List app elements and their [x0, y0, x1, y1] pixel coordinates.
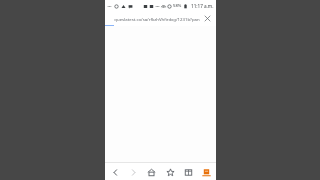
staticText: queslatest.co/sa/rfkzhVhfirdxg/1231b?pan [112, 16, 202, 22]
button[interactable]: Forward [125, 164, 141, 180]
button[interactable]: More options [198, 164, 214, 180]
button[interactable]: queslatest.co/sa/rfkzhVhfirdxg/1231b?pan [105, 12, 216, 25]
staticText: 11:17 a.m. [191, 3, 214, 9]
button[interactable]: Bookmarks [162, 164, 178, 180]
button[interactable]: Close tab [202, 13, 213, 24]
button[interactable]: Home [143, 164, 159, 180]
staticText: 58% [173, 3, 182, 9]
button[interactable]: Tabs [180, 164, 196, 180]
button[interactable]: Back [107, 164, 123, 180]
